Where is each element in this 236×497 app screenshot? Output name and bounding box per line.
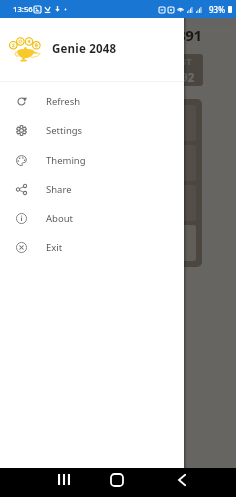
staticText: 2391 xyxy=(169,25,202,45)
button[interactable]: Refresh xyxy=(0,87,184,116)
staticText: Genie 2048 xyxy=(52,41,117,57)
button[interactable]: Exit xyxy=(0,233,184,262)
staticText: Share xyxy=(46,183,72,196)
staticText: Exit xyxy=(46,241,63,254)
staticText: 13:56 xyxy=(13,4,33,14)
staticText: 93% xyxy=(209,4,225,15)
staticText: About xyxy=(46,212,73,225)
button[interactable]: Settings xyxy=(0,116,184,145)
button[interactable]: Theming xyxy=(0,146,184,175)
staticText: 2391 xyxy=(119,69,147,85)
staticText: Refresh xyxy=(46,95,81,108)
button[interactable]: Share xyxy=(0,175,184,204)
button[interactable]: About xyxy=(0,204,184,233)
button[interactable]: Back xyxy=(167,468,197,491)
staticText: BEST xyxy=(171,56,192,67)
button[interactable]: Home xyxy=(102,468,132,491)
staticText: Theming xyxy=(46,154,86,167)
button[interactable]: Genie 2048 xyxy=(0,0,184,82)
button[interactable]: Recents xyxy=(49,468,79,491)
staticText: 2392 xyxy=(167,69,195,85)
staticText: Settings xyxy=(46,124,83,137)
